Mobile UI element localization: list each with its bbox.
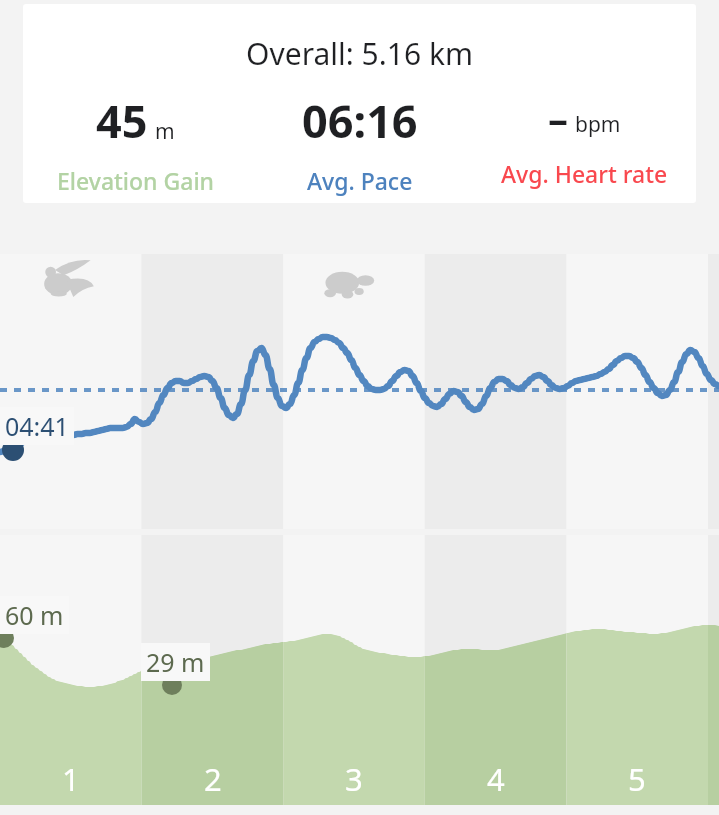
staticText: 45 [96, 90, 148, 151]
staticText: 60 m [5, 598, 64, 632]
button[interactable]: 5 [566, 752, 708, 805]
button[interactable]: 4 [425, 752, 567, 805]
button[interactable]: Fastest pace [42, 257, 96, 311]
button[interactable]: 45 [23, 90, 248, 196]
button[interactable]: 06:16 [248, 90, 472, 196]
staticText: 1 [62, 758, 80, 800]
staticText: Elevation Gain [57, 165, 215, 196]
button[interactable]: 3 [283, 752, 425, 805]
staticText: 4 [487, 758, 505, 800]
staticText: 29 m [146, 645, 205, 679]
staticText: – [548, 90, 568, 144]
button[interactable]: 1 [0, 752, 142, 805]
staticText: 5 [628, 758, 646, 800]
button[interactable]: Slowest pace [322, 259, 380, 317]
button[interactable]: Overall: 5.16 km [23, 4, 696, 203]
staticText: 06:16 [302, 90, 418, 151]
staticText: Avg. Heart rate [501, 158, 668, 189]
staticText: bpm [575, 110, 621, 139]
staticText: m [155, 117, 175, 146]
staticText: Overall: 5.16 km [23, 33, 696, 74]
staticText: 2 [204, 758, 222, 800]
button[interactable]: 2 [142, 752, 284, 805]
staticText: Avg. Pace [307, 165, 413, 196]
staticText: 3 [345, 758, 363, 800]
staticText: 04:41 [5, 409, 69, 443]
button[interactable]: – [472, 90, 696, 189]
